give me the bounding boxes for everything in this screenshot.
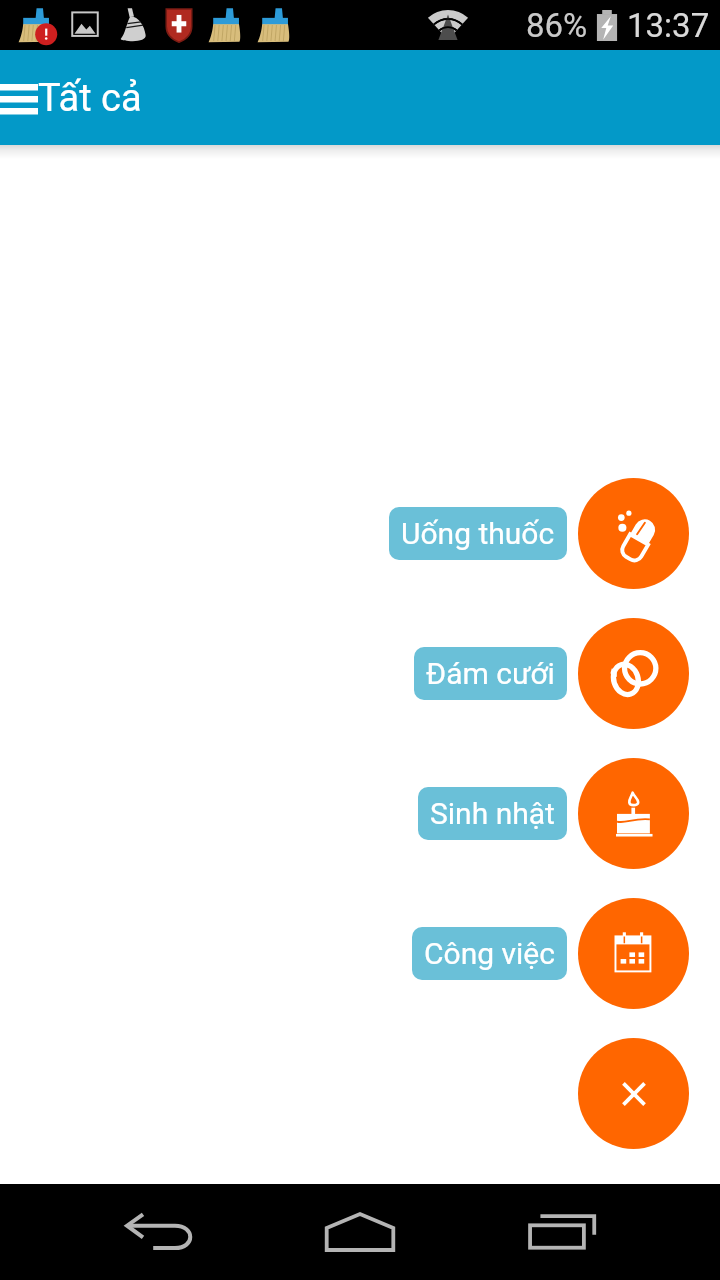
button[interactable]: Recent apps — [512, 1190, 612, 1274]
button[interactable] — [578, 758, 689, 869]
button[interactable]: Back — [110, 1190, 210, 1274]
staticText: Uống thuốc — [401, 516, 555, 551]
button[interactable] — [578, 618, 689, 729]
button[interactable]: Uống thuốc — [389, 507, 567, 560]
button[interactable] — [578, 478, 689, 589]
button[interactable]: Công việc — [412, 927, 567, 980]
staticText: 13:37 — [627, 6, 710, 45]
button[interactable]: Đám cưới — [414, 647, 567, 700]
button[interactable] — [578, 898, 689, 1009]
staticText: Công việc — [424, 936, 555, 971]
staticText: Sinh nhật — [430, 796, 555, 831]
staticText: Đám cưới — [426, 656, 555, 691]
button[interactable]: Open navigation drawer — [0, 67, 38, 129]
staticText: 86% — [526, 6, 588, 45]
button[interactable]: Home — [310, 1190, 410, 1274]
staticText: Tất cả — [38, 76, 142, 121]
button[interactable]: Close actions menu — [578, 1038, 689, 1149]
button[interactable]: Sinh nhật — [418, 787, 567, 840]
